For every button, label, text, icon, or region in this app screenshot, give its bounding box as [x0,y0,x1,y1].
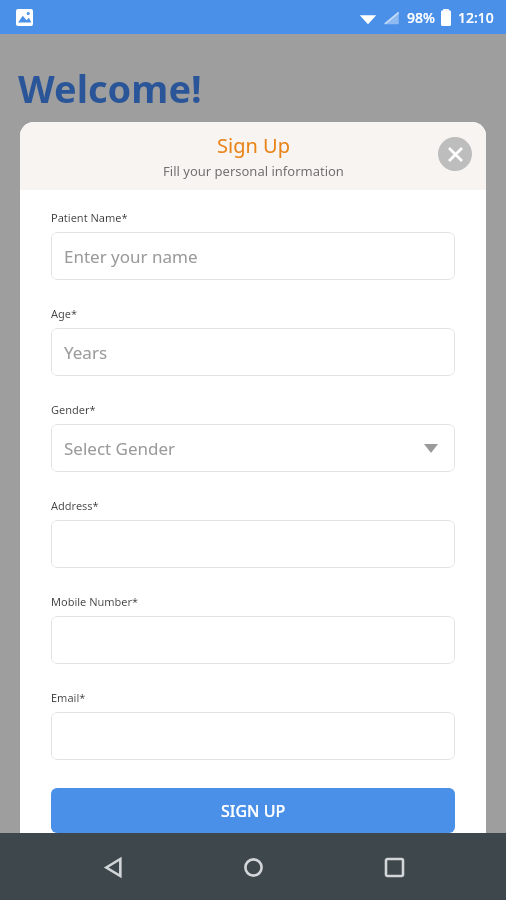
staticText: Age* [51,306,78,321]
staticText: Fill your personal information [163,162,344,180]
button[interactable]: Recent apps [366,839,422,895]
staticText: Welcome! [18,62,202,114]
staticText: Mobile Number* [51,594,139,609]
button[interactable]: Enter your name [51,232,455,280]
button[interactable] [51,712,455,760]
button[interactable]: Close [438,137,472,171]
staticText: Gender* [51,402,96,417]
staticText: Address* [51,498,99,513]
staticText: Select Gender [64,437,176,460]
button[interactable] [51,520,455,568]
staticText: Enter your name [64,245,198,268]
staticText: 98% [407,8,435,27]
button[interactable]: Years [51,328,455,376]
staticText: Email* [51,690,86,705]
staticText: 12:10 [458,8,494,27]
button[interactable]: Back [85,839,141,895]
button[interactable]: SIGN UP [51,788,455,833]
button[interactable] [51,616,455,664]
staticText: Years [64,341,108,364]
button[interactable]: Home [225,839,281,895]
staticText: SIGN UP [221,800,286,822]
staticText: Patient Name* [51,210,128,225]
staticText: Sign Up [217,132,290,159]
button[interactable]: Select Gender [51,424,455,472]
